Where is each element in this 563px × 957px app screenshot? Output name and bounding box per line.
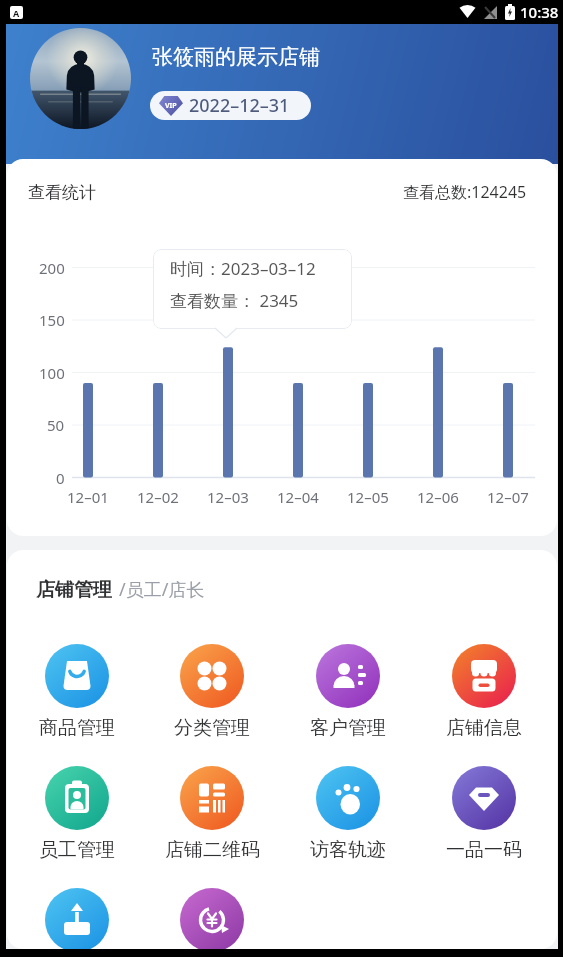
- staticText: 0: [56, 468, 65, 488]
- staticText: 员工管理: [39, 838, 115, 862]
- staticText: 查看数量： 2345: [170, 289, 299, 312]
- staticText: 12–04: [277, 487, 319, 507]
- button[interactable]: [144, 888, 280, 949]
- staticText: 12–05: [347, 487, 389, 507]
- staticText: 12–01: [67, 487, 109, 507]
- staticText: A: [13, 7, 20, 19]
- button[interactable]: 分类管理: [144, 644, 280, 740]
- staticText: 店铺二维码: [165, 838, 260, 862]
- button[interactable]: 客户管理: [280, 644, 416, 740]
- button[interactable]: 店铺二维码: [144, 766, 280, 862]
- staticText: 50: [47, 415, 65, 435]
- button[interactable]: 店铺信息: [416, 644, 552, 740]
- button[interactable]: [9, 888, 144, 949]
- staticText: 12–06: [417, 487, 459, 507]
- staticText: 客户管理: [310, 716, 386, 740]
- staticText: 查看总数:124245: [403, 181, 527, 203]
- staticText: 10:38: [520, 2, 559, 22]
- staticText: 12–07: [487, 487, 529, 507]
- button[interactable]: [30, 28, 131, 129]
- staticText: VIP: [165, 101, 177, 111]
- staticText: 查看统计: [28, 182, 96, 203]
- staticText: 时间：2023–03–12: [170, 257, 316, 280]
- staticText: 店铺管理: [36, 578, 112, 602]
- staticText: 2022–12–31: [189, 93, 290, 118]
- staticText: /员工/店长: [119, 577, 205, 602]
- staticText: 100: [39, 363, 65, 383]
- staticText: 12–02: [137, 487, 179, 507]
- staticText: 张筱雨的展示店铺: [152, 44, 320, 70]
- staticText: 一品一码: [446, 838, 522, 862]
- staticText: 访客轨迹: [310, 838, 386, 862]
- staticText: 12–03: [207, 487, 249, 507]
- button[interactable]: 商品管理: [9, 644, 144, 740]
- button[interactable]: 一品一码: [416, 766, 552, 862]
- staticText: 商品管理: [39, 716, 115, 740]
- staticText: 150: [39, 310, 65, 330]
- staticText: 200: [39, 258, 65, 278]
- staticText: 分类管理: [174, 716, 250, 740]
- button[interactable]: VIP: [150, 91, 311, 120]
- button[interactable]: 员工管理: [9, 766, 144, 862]
- staticText: 店铺信息: [446, 716, 522, 740]
- button[interactable]: 访客轨迹: [280, 766, 416, 862]
